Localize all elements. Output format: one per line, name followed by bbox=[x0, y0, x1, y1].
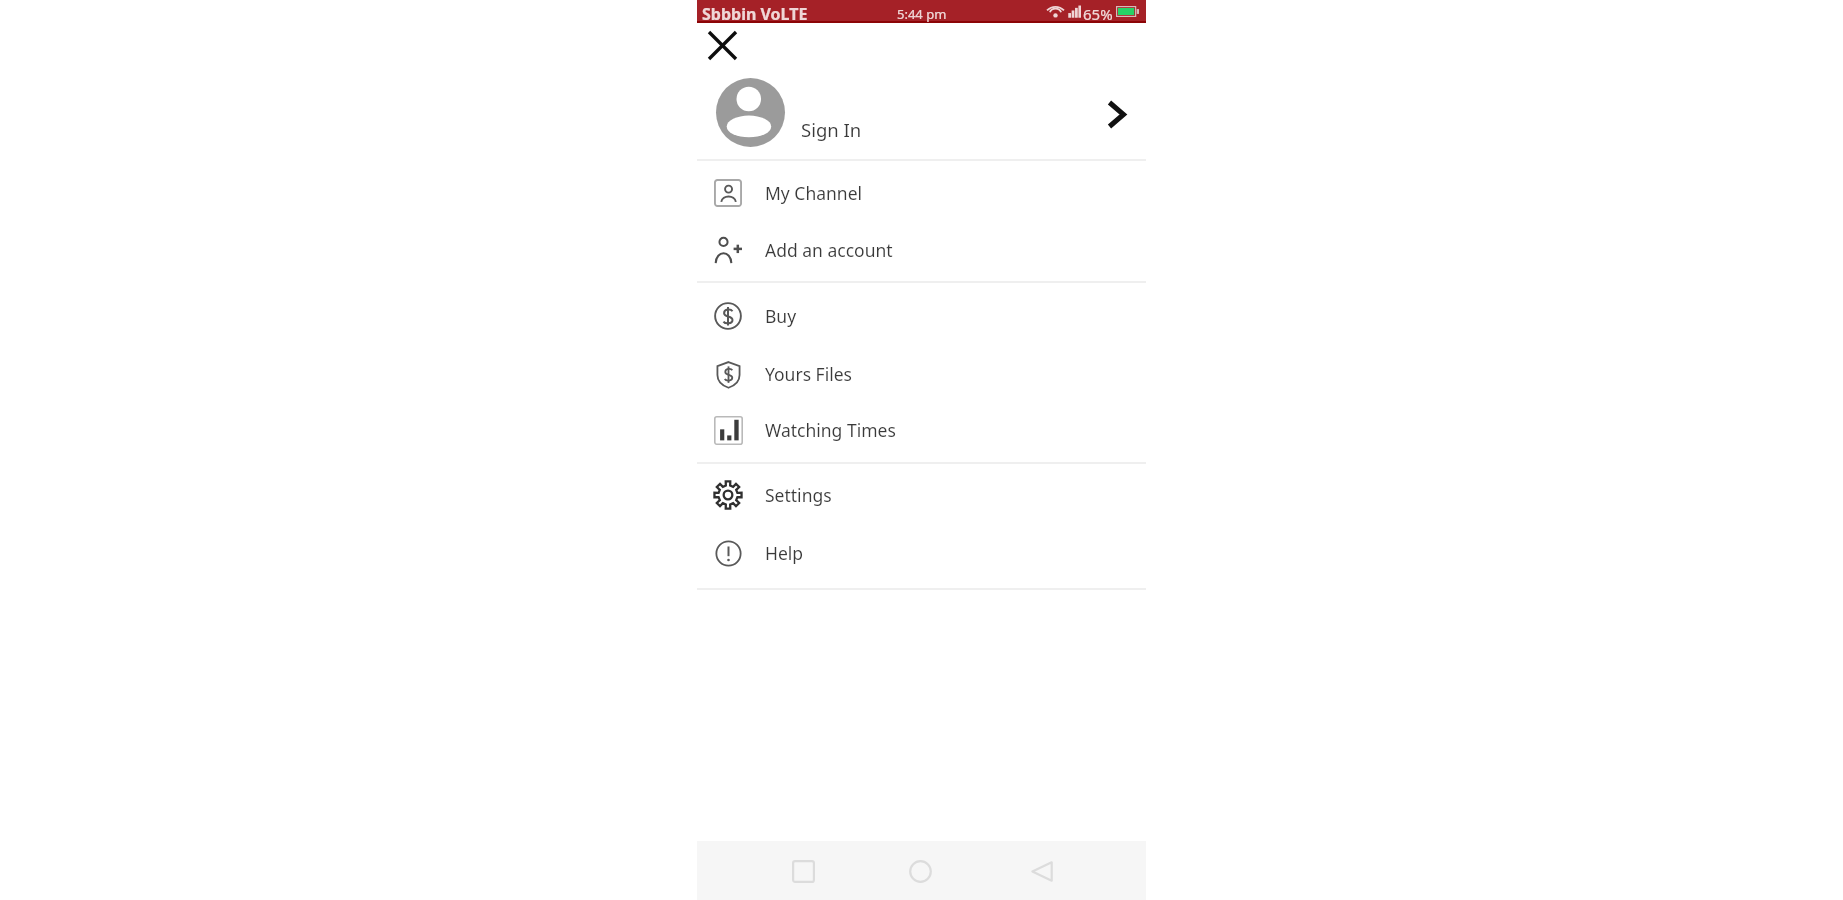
button[interactable]: Add an account bbox=[697, 221, 1146, 278]
staticText: 65% bbox=[1083, 4, 1113, 24]
button[interactable]: Sign in bbox=[1093, 91, 1139, 137]
staticText: Sign In bbox=[801, 117, 862, 142]
staticText: Settings bbox=[765, 483, 832, 507]
button[interactable]: Settings bbox=[697, 466, 1146, 523]
button[interactable]: Help bbox=[697, 524, 1146, 581]
button[interactable]: Watching Times bbox=[697, 401, 1146, 458]
button[interactable]: Yours Files bbox=[697, 345, 1146, 402]
button[interactable]: My Channel bbox=[697, 164, 1146, 221]
staticText: Buy bbox=[765, 304, 797, 328]
button[interactable]: Home bbox=[897, 848, 944, 895]
staticText: Help bbox=[765, 541, 804, 565]
button[interactable]: Close bbox=[699, 22, 746, 69]
button[interactable]: Recents bbox=[780, 848, 827, 895]
button[interactable]: Back bbox=[1019, 848, 1066, 895]
button[interactable]: Sign In bbox=[697, 68, 1146, 160]
staticText: My Channel bbox=[765, 181, 863, 205]
staticText: Watching Times bbox=[765, 418, 896, 442]
staticText: 5:44 pm bbox=[897, 5, 947, 23]
staticText: Add an account bbox=[765, 238, 893, 262]
staticText: Sbbbin VoLTE bbox=[702, 3, 808, 25]
staticText: Yours Files bbox=[765, 362, 852, 386]
button[interactable]: Buy bbox=[697, 287, 1146, 344]
